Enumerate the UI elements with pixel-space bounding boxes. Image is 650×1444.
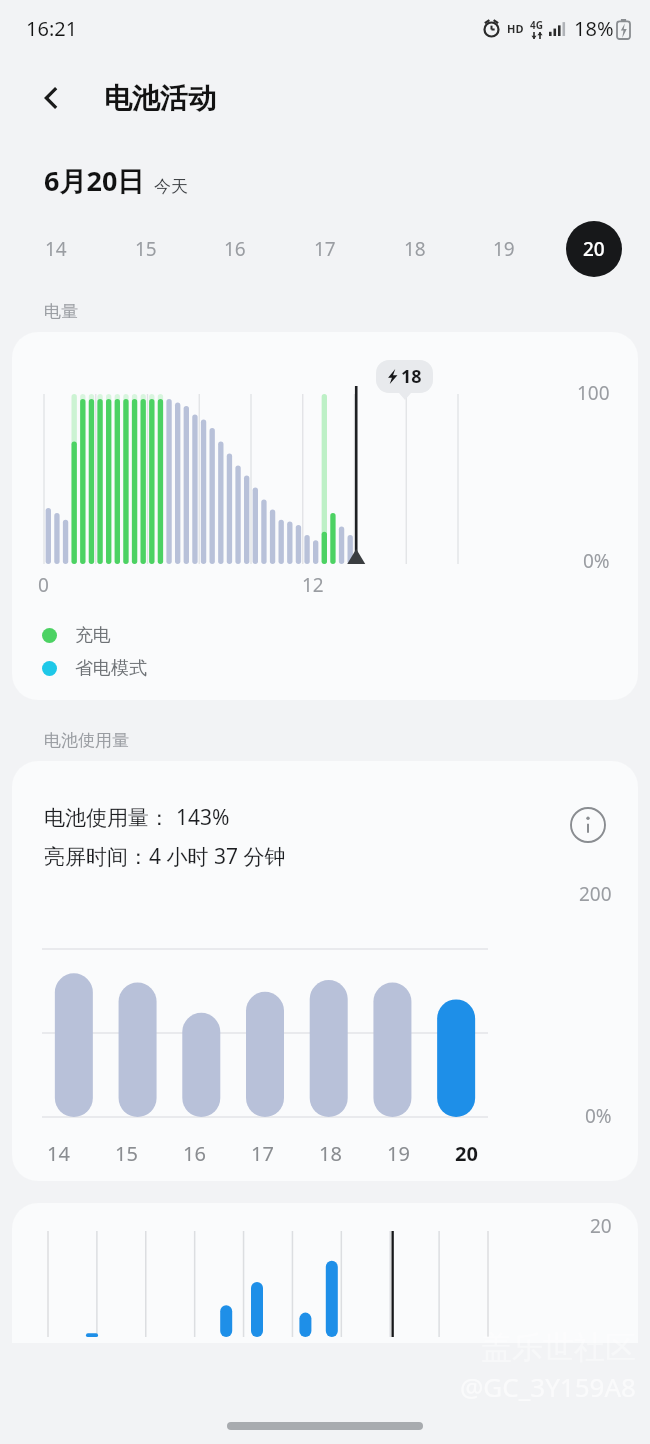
staticText: 15 (135, 236, 157, 262)
button[interactable]: 20 (12, 1203, 638, 1343)
staticText: HD (507, 21, 524, 36)
staticText: 亮屏时间：4 小时 37 分钟 (44, 842, 286, 871)
staticText: 17 (314, 236, 336, 262)
staticText: 12 (302, 572, 324, 598)
staticText: 16:21 (26, 15, 78, 42)
button[interactable]: 19 (476, 221, 532, 277)
button[interactable]: 15 (118, 221, 174, 277)
button[interactable]: 14 (28, 221, 84, 277)
button[interactable]: 17 (297, 221, 353, 277)
staticText: 0% (583, 548, 610, 574)
staticText: 143% (176, 803, 230, 832)
staticText: 20 (590, 1213, 612, 1239)
button[interactable]: Information (566, 803, 610, 847)
staticText: 今天 (154, 176, 188, 197)
button[interactable]: 电池使用量： (12, 761, 638, 1181)
staticText: 19 (387, 1140, 410, 1167)
button[interactable]: 16 (207, 221, 263, 277)
staticText: 18% (574, 15, 614, 42)
staticText: 18 (404, 236, 426, 262)
staticText: 16 (183, 1140, 206, 1167)
staticText: 15 (115, 1140, 138, 1167)
staticText: 16 (224, 236, 246, 262)
staticText: 省电模式 (75, 657, 147, 680)
staticText: 充电 (75, 624, 111, 647)
staticText: 200 (579, 881, 612, 907)
staticText: 14 (47, 1140, 70, 1167)
staticText: 0% (585, 1103, 612, 1129)
staticText: 0 (38, 572, 49, 598)
staticText: 20 (583, 236, 605, 262)
staticText: 17 (251, 1140, 274, 1167)
staticText: 盖乐世社区 (481, 1328, 636, 1367)
staticText: 4G (530, 18, 543, 32)
staticText: 18 (401, 364, 422, 389)
staticText: 电池活动 (104, 81, 216, 116)
staticText: 电池使用量： (44, 805, 170, 831)
staticText: 6月20日 (44, 162, 145, 199)
staticText: 19 (493, 236, 515, 262)
staticText: 14 (45, 236, 67, 262)
staticText: 100 (577, 380, 610, 406)
staticText: 18 (319, 1140, 342, 1167)
button[interactable]: 18 (387, 221, 443, 277)
staticText: 电量 (44, 301, 78, 322)
staticText: 电池使用量 (44, 730, 129, 751)
button[interactable]: Back (26, 72, 78, 124)
button[interactable]: 100 (12, 332, 638, 700)
staticText: 20 (455, 1140, 478, 1167)
button[interactable]: 20 (566, 221, 622, 277)
